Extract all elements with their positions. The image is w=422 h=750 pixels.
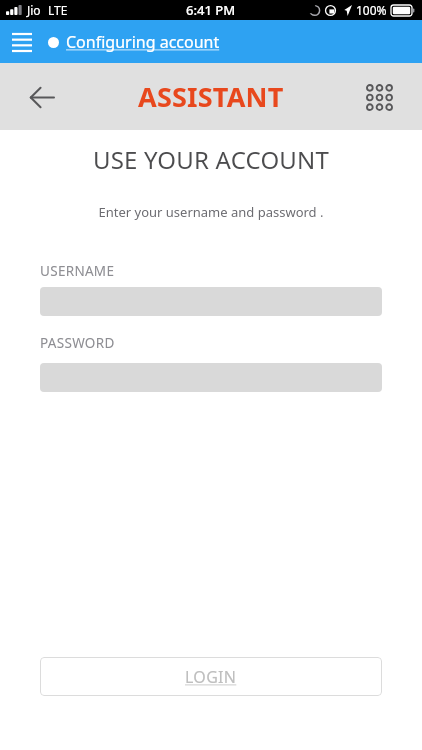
staticText: LTE [48,2,68,18]
button[interactable]: Configuring account [42,31,228,53]
staticText: Jio [27,2,41,18]
staticText: PASSWORD [40,334,115,352]
staticText: USE YOUR ACCOUNT [0,143,422,176]
staticText: Configuring account [66,31,220,53]
staticText: ASSISTANT [138,78,284,115]
staticText: 100% [356,2,387,18]
button[interactable]: Back [18,73,66,121]
button[interactable]: Menu [2,22,42,62]
staticText: LOGIN [185,666,237,688]
staticText: Enter your username and password . [0,203,422,221]
staticText: 6:41 PM [186,1,236,19]
staticText: USERNAME [40,262,115,280]
button[interactable]: Apps [357,75,401,119]
button[interactable]: LOGIN [40,657,382,696]
